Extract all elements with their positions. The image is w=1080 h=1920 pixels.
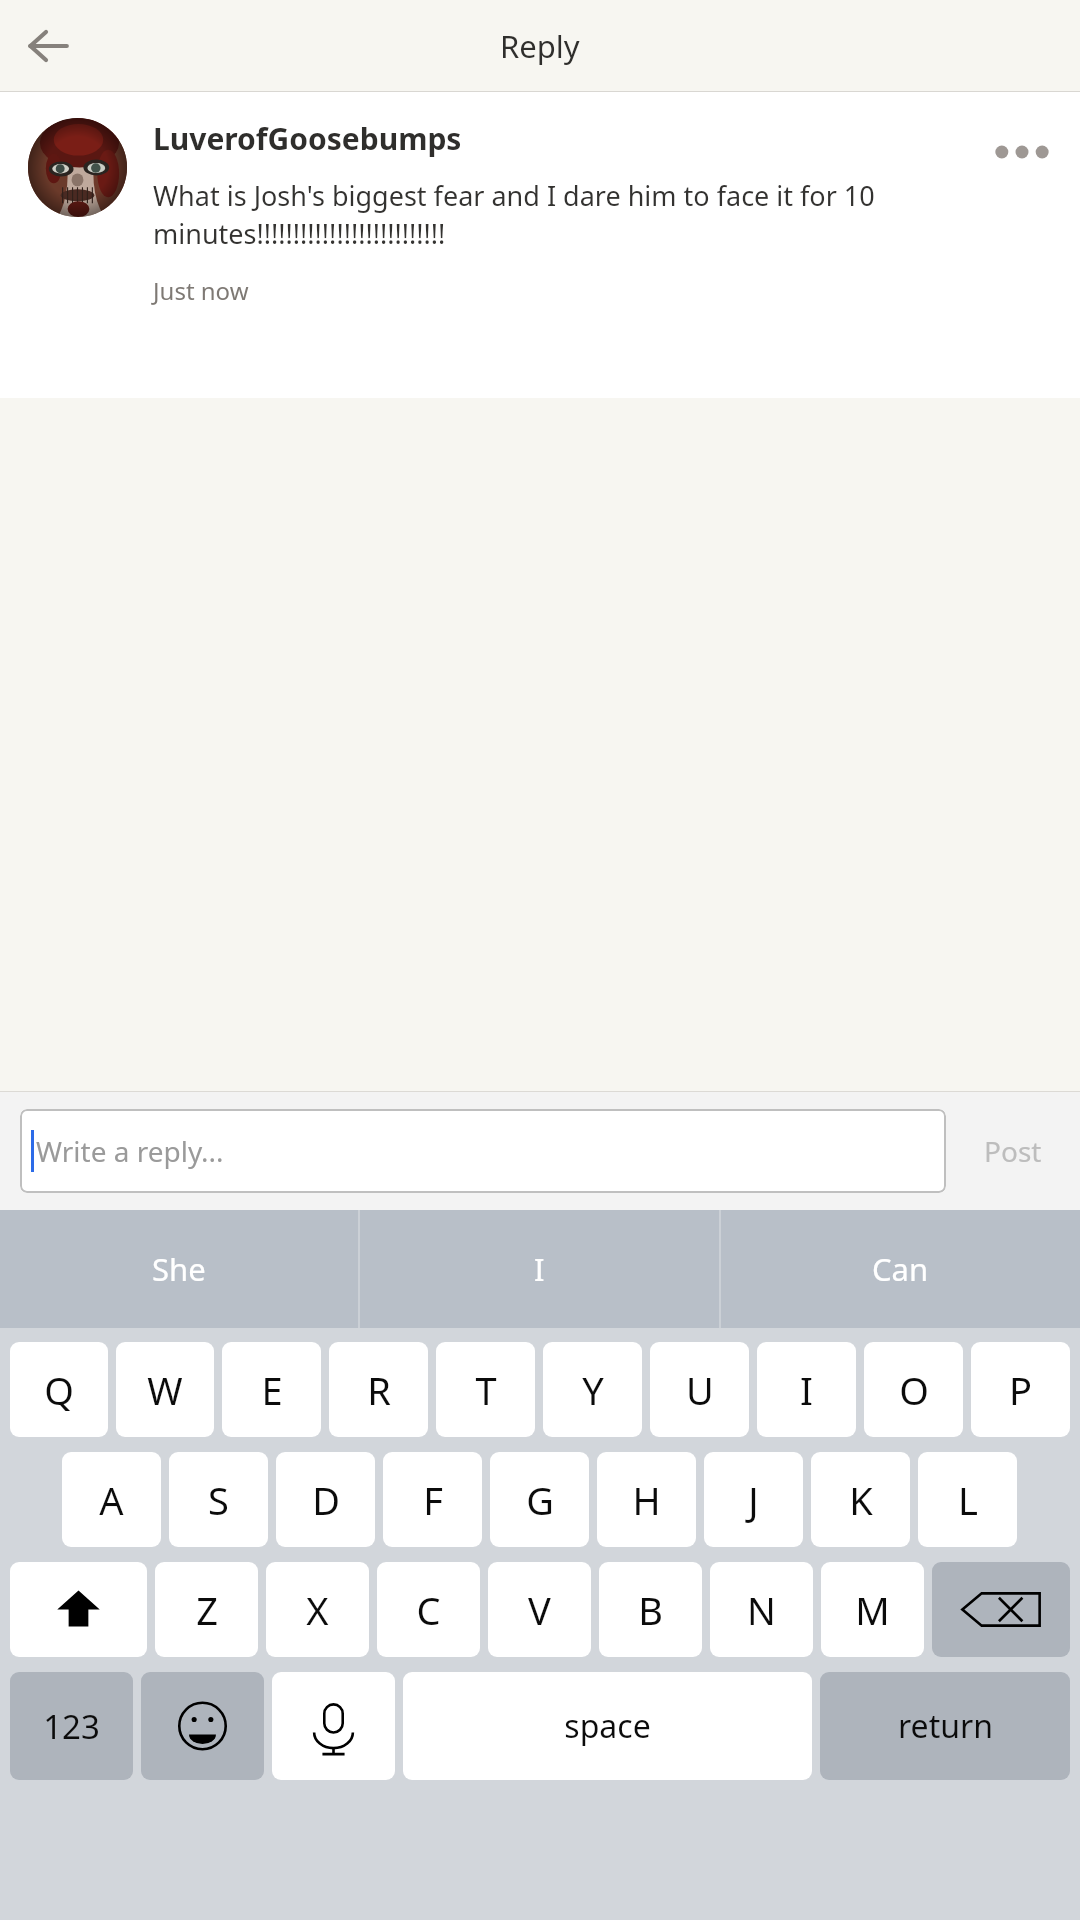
button[interactable]: C — [377, 1562, 480, 1657]
button[interactable]: X — [266, 1562, 369, 1657]
staticText: W — [147, 1364, 183, 1416]
staticText: G — [526, 1474, 554, 1526]
button[interactable]: V — [488, 1562, 591, 1657]
staticText: Reply — [500, 25, 580, 67]
staticText: B — [638, 1584, 663, 1636]
staticText: I — [800, 1364, 813, 1416]
button[interactable]: H — [597, 1452, 696, 1547]
staticText: return — [898, 1704, 993, 1748]
staticText: Can — [872, 1248, 929, 1290]
button[interactable]: Back — [16, 14, 80, 78]
button[interactable]: Can — [721, 1210, 1080, 1328]
button[interactable]: O — [864, 1342, 963, 1437]
staticText: U — [686, 1364, 714, 1416]
staticText: F — [423, 1474, 443, 1526]
staticText: O — [899, 1364, 929, 1416]
button[interactable]: M — [821, 1562, 924, 1657]
staticText: I — [534, 1248, 545, 1290]
button[interactable]: E — [222, 1342, 321, 1437]
staticText: P — [1009, 1364, 1032, 1416]
button[interactable]: T — [436, 1342, 535, 1437]
staticText: LuverofGoosebumps — [153, 118, 462, 159]
button[interactable]: She — [0, 1210, 358, 1328]
staticText: X — [306, 1584, 329, 1636]
staticText: E — [261, 1364, 283, 1416]
button[interactable]: I — [757, 1342, 856, 1437]
button[interactable]: K — [811, 1452, 910, 1547]
staticText: Write a reply... — [36, 1132, 224, 1170]
button[interactable]: A — [62, 1452, 161, 1547]
staticText: C — [416, 1584, 441, 1636]
button[interactable]: Write a reply... — [20, 1109, 946, 1193]
staticText: R — [367, 1364, 391, 1416]
button[interactable]: N — [710, 1562, 813, 1657]
button[interactable]: J — [704, 1452, 803, 1547]
button[interactable]: P — [971, 1342, 1070, 1437]
button[interactable]: Shift — [10, 1562, 147, 1657]
staticText: A — [99, 1474, 124, 1526]
staticText: S — [208, 1474, 229, 1526]
staticText: V — [528, 1584, 551, 1636]
button[interactable]: 123 — [10, 1672, 133, 1780]
staticText: She — [152, 1248, 206, 1290]
button[interactable]: Y — [543, 1342, 642, 1437]
staticText: Z — [196, 1584, 218, 1636]
button[interactable]: Emoji — [141, 1672, 264, 1780]
button[interactable]: Q — [10, 1342, 108, 1437]
staticText: L — [958, 1474, 978, 1526]
staticText: H — [632, 1474, 661, 1526]
button[interactable]: R — [329, 1342, 428, 1437]
staticText: Y — [582, 1364, 604, 1416]
button[interactable]: D — [276, 1452, 375, 1547]
staticText: D — [312, 1474, 340, 1526]
staticText: Q — [44, 1364, 74, 1416]
button[interactable]: S — [169, 1452, 268, 1547]
staticText: M — [855, 1584, 890, 1636]
staticText: Just now — [153, 274, 249, 307]
button[interactable]: F — [383, 1452, 482, 1547]
button[interactable]: G — [490, 1452, 589, 1547]
button[interactable]: W — [116, 1342, 214, 1437]
staticText: J — [748, 1474, 759, 1526]
button[interactable]: L — [918, 1452, 1017, 1547]
button[interactable]: U — [650, 1342, 749, 1437]
button[interactable]: Z — [155, 1562, 258, 1657]
staticText: 123 — [43, 1704, 100, 1749]
button[interactable]: More options — [990, 122, 1054, 182]
staticText: What is Josh's biggest fear and I dare h… — [153, 177, 972, 252]
button[interactable]: B — [599, 1562, 702, 1657]
staticText: N — [747, 1584, 776, 1636]
button[interactable]: Voice input — [272, 1672, 395, 1780]
staticText: space — [564, 1704, 651, 1748]
button[interactable]: Post — [946, 1092, 1080, 1210]
button[interactable]: I — [360, 1210, 719, 1328]
button[interactable]: return — [820, 1672, 1070, 1780]
staticText: Post — [984, 1132, 1042, 1170]
button[interactable]: Backspace — [932, 1562, 1070, 1657]
button[interactable]: space — [403, 1672, 812, 1780]
staticText: T — [475, 1364, 497, 1416]
staticText: K — [849, 1474, 873, 1526]
